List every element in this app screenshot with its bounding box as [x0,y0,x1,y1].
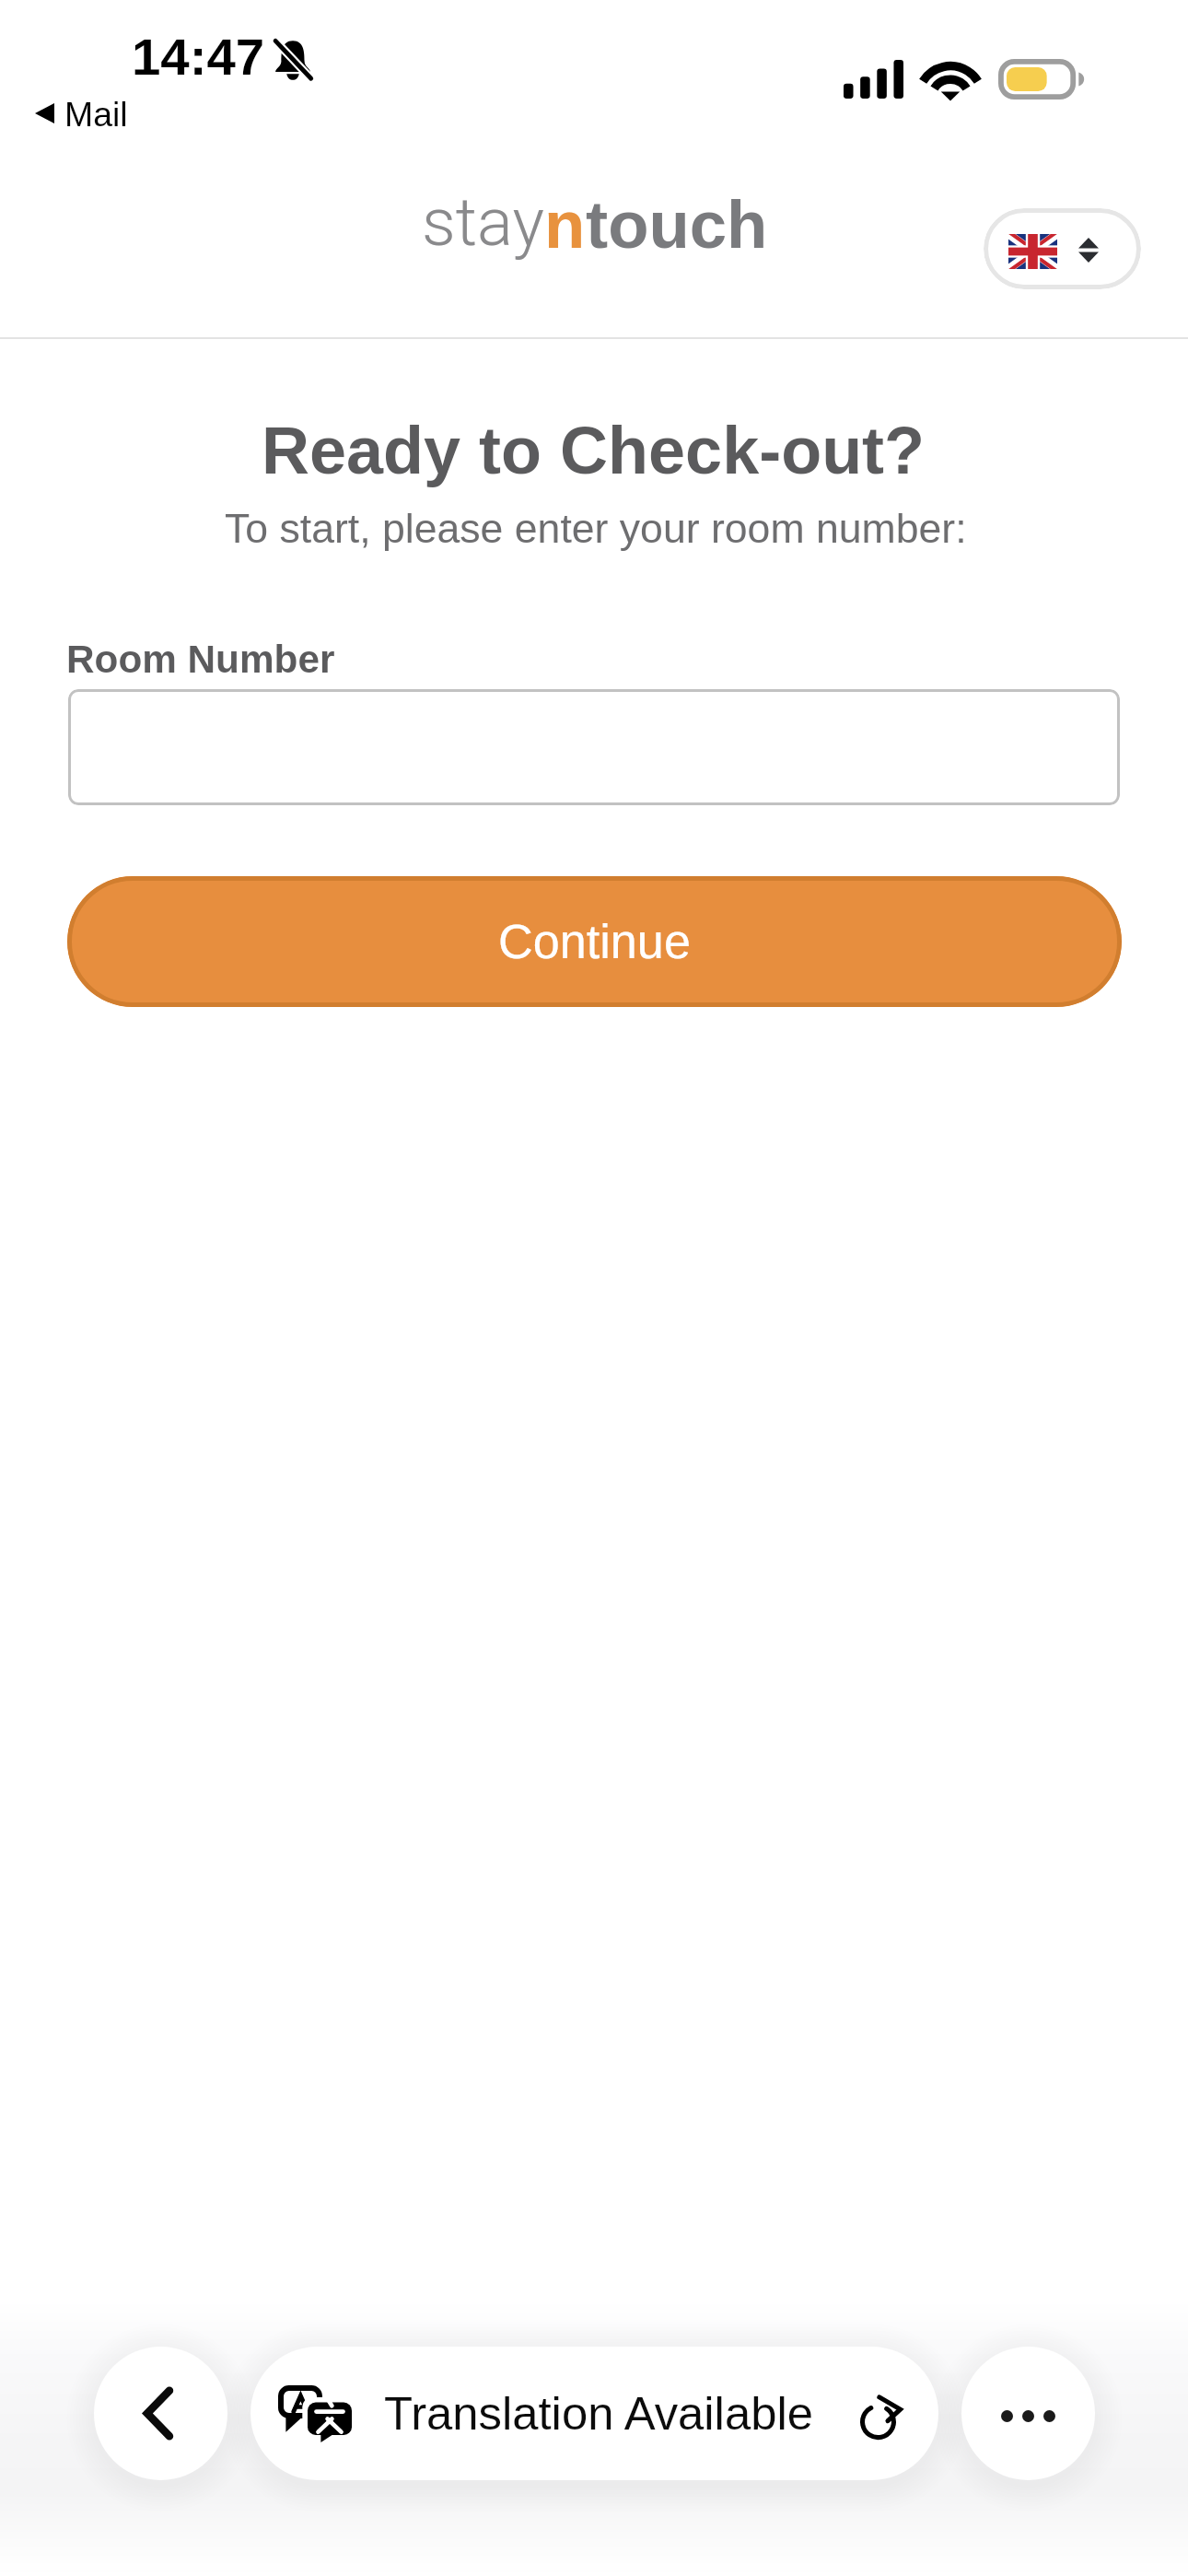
button[interactable]: More options [961,2347,1095,2480]
staticText: touch [586,187,768,262]
staticText: Ready to Check-out? [262,414,926,487]
staticText: Room Number [66,638,335,681]
staticText: 14:47 [132,28,265,86]
staticText: To start, please enter your room number: [225,506,967,552]
staticText: Translation Available [384,2387,813,2440]
staticText: stay [422,183,544,262]
staticText: Mail [64,95,128,134]
button[interactable]: Continue [67,876,1122,1007]
button[interactable]: Room Number entry field [68,689,1120,805]
button[interactable]: Back [94,2347,227,2480]
staticText: n [544,187,586,262]
button[interactable]: Select language [984,208,1141,289]
staticText: Continue [498,915,691,968]
button[interactable]: Translation Available [250,2347,938,2480]
